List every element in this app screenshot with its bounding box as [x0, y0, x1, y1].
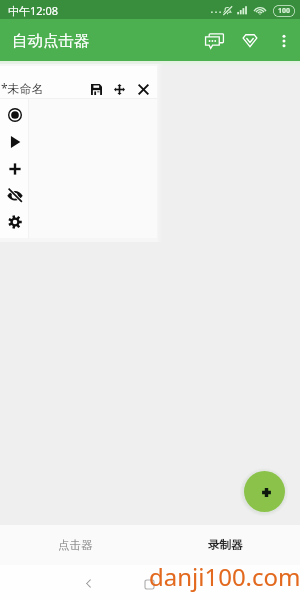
staticText: 中午12:08 [8, 3, 59, 18]
button[interactable]: Rewards [232, 23, 268, 59]
button[interactable]: More options [268, 25, 300, 57]
button[interactable]: Close [132, 78, 154, 100]
staticText: 100 [278, 6, 291, 16]
button[interactable]: Home [134, 569, 164, 599]
staticText: 自动点击器 [12, 31, 90, 51]
button[interactable]: 点击器 [0, 525, 150, 565]
button[interactable]: Add [244, 471, 285, 512]
button[interactable]: Save [85, 78, 107, 100]
button[interactable]: Back [73, 568, 103, 598]
button[interactable]: Feedback [196, 23, 232, 59]
button[interactable]: Settings [2, 209, 28, 235]
button[interactable]: Add [2, 156, 28, 182]
button[interactable]: Hide [2, 182, 28, 208]
staticText: 点击器 [58, 538, 93, 552]
button[interactable]: Record [2, 102, 28, 128]
button[interactable]: Move [108, 78, 130, 100]
button[interactable]: Play [2, 129, 28, 155]
staticText: *未命名 [1, 80, 44, 96]
button[interactable]: 录制器 [150, 525, 300, 565]
staticText: danji100.com [149, 560, 300, 593]
staticText: 录制器 [208, 538, 243, 552]
